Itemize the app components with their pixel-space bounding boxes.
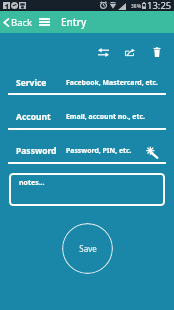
staticText: 13:25 (147, 0, 172, 10)
button[interactable]: Service (0, 66, 174, 95)
button[interactable]: Back (3, 11, 33, 33)
staticText: Back (11, 16, 33, 29)
button[interactable]: Delete (149, 44, 165, 60)
staticText: Save (79, 243, 97, 254)
staticText: Entry (61, 15, 87, 29)
staticText: Facebook, Mastercard, etc. (66, 78, 159, 87)
button[interactable]: Generate password (144, 144, 160, 160)
staticText: Service (16, 77, 47, 89)
staticText: Account (16, 111, 51, 123)
staticText: Password, PIN, etc. (66, 146, 132, 155)
button[interactable]: Account (0, 100, 174, 130)
button[interactable]: Swap (95, 44, 112, 60)
button[interactable]: Password (0, 134, 174, 164)
button[interactable]: Menu (36, 11, 52, 33)
staticText: Password (16, 145, 57, 157)
staticText: 38% (131, 3, 142, 10)
staticText: notes... (19, 178, 45, 188)
button[interactable]: notes... (9, 173, 165, 206)
staticText: Email, account no., etc. (66, 112, 145, 121)
button[interactable]: Share (121, 44, 137, 60)
button[interactable]: Save (62, 223, 113, 274)
